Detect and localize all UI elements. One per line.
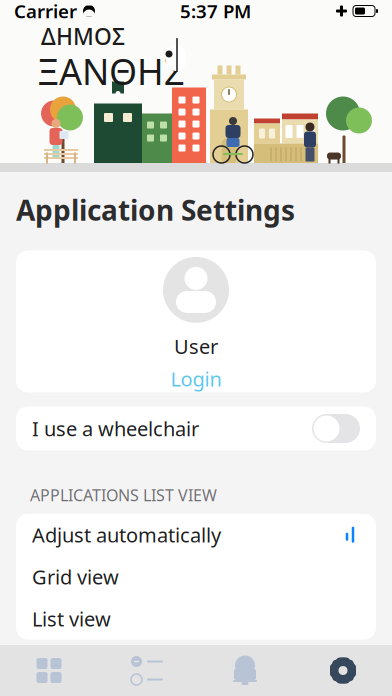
staticText: ΞΑΝΘΗΣ [37,47,185,95]
staticText: User [174,333,218,359]
staticText: List view [32,605,111,632]
staticText: Grid view [32,563,119,590]
button[interactable]: Applications [0,645,98,696]
button[interactable]: I use a wheelchair [16,406,376,450]
staticText: 5:37 PM [180,0,251,23]
staticText: APPLICATIONS LIST VIEW [30,484,217,506]
button[interactable]: List view [16,598,376,640]
button[interactable]: Adjust automatically [16,514,376,556]
staticText: Login [170,365,221,392]
staticText: Carrier [14,0,77,23]
button[interactable]: Settings [294,645,392,696]
button[interactable]: Login [154,359,237,396]
button[interactable]: Grid view [16,556,376,598]
staticText: ΔΗΜΟΣ [41,21,125,51]
button[interactable]: Requests [98,645,196,696]
button[interactable]: Notifications [196,645,294,696]
staticText: Adjust automatically [32,521,221,548]
staticText: Application Settings [16,191,295,228]
staticText: I use a wheelchair [32,415,199,442]
